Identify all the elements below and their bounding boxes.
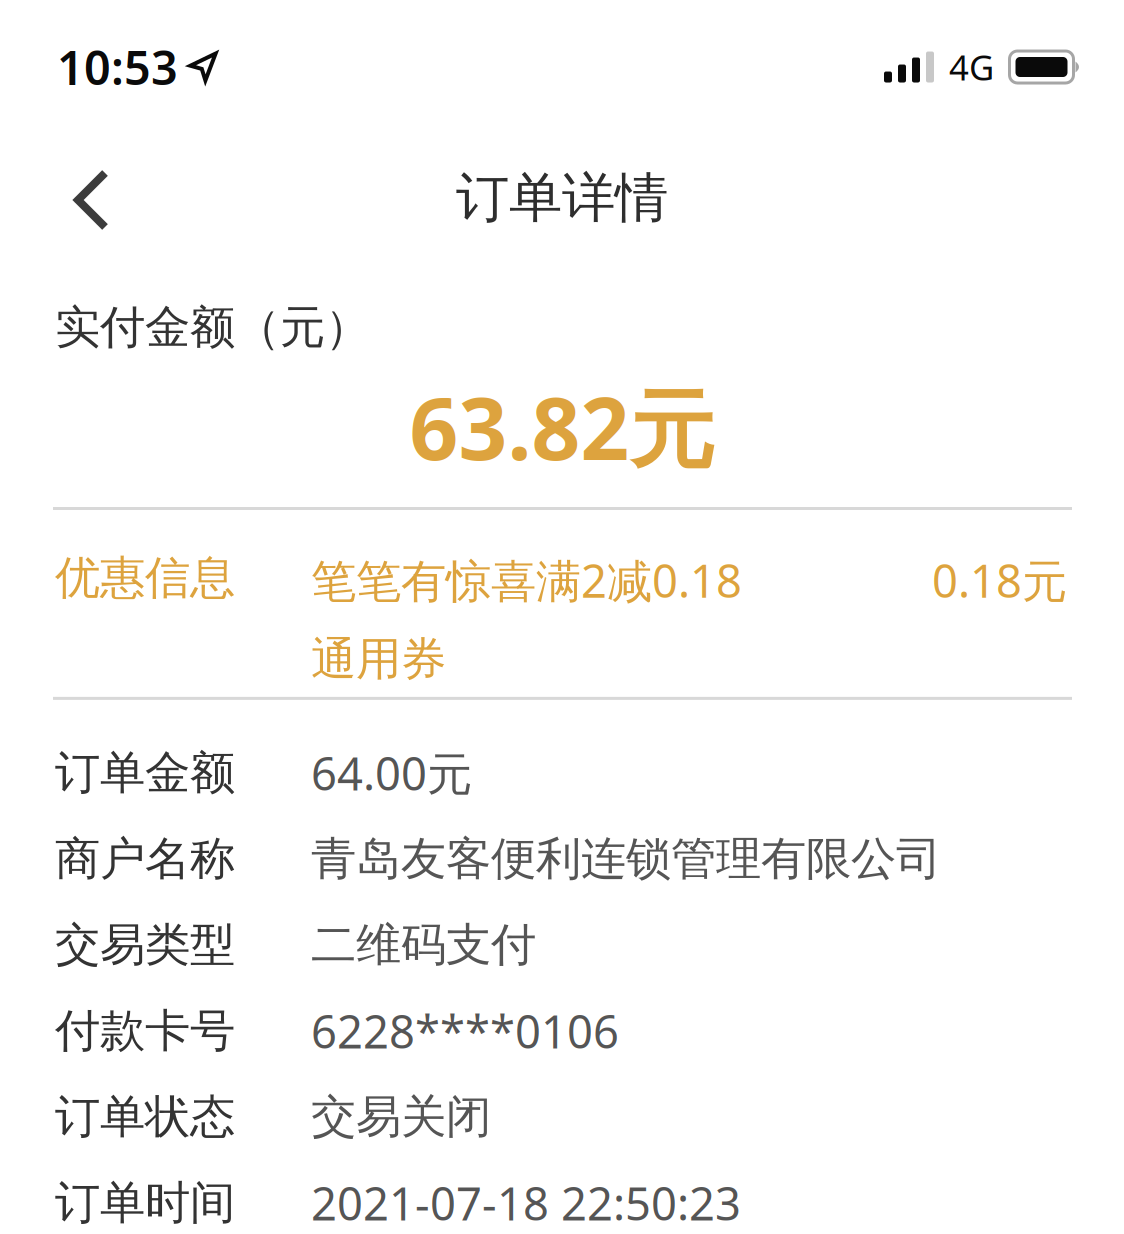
staticText: 优惠信息 bbox=[55, 550, 235, 606]
staticText: 订单时间 bbox=[55, 1175, 235, 1231]
staticText: 10:53 bbox=[57, 36, 178, 98]
staticText: 订单详情 bbox=[456, 165, 668, 231]
staticText: 订单金额 bbox=[55, 745, 235, 801]
staticText: 2021-07-18 22:50:23 bbox=[311, 1173, 741, 1233]
button[interactable]: 返回 bbox=[0, 169, 145, 227]
staticText: 6228****0106 bbox=[311, 1001, 619, 1061]
staticText: 交易关闭 bbox=[311, 1089, 491, 1145]
staticText: 青岛友客便利连锁管理有限公司 bbox=[311, 831, 941, 887]
staticText: 订单状态 bbox=[55, 1089, 235, 1145]
staticText: 通用券 bbox=[311, 631, 446, 687]
staticText: 0.18元 bbox=[932, 550, 1067, 610]
staticText: 64.00元 bbox=[311, 743, 472, 803]
staticText: 二维码支付 bbox=[311, 917, 536, 973]
staticText: 付款卡号 bbox=[55, 1003, 235, 1059]
staticText: 实付金额（元） bbox=[55, 300, 370, 355]
staticText: 交易类型 bbox=[55, 917, 235, 973]
staticText: 笔笔有惊喜满2减0.18 bbox=[311, 550, 742, 610]
staticText: 63.82元 bbox=[409, 370, 714, 484]
staticText: 4G bbox=[949, 44, 994, 90]
staticText: 商户名称 bbox=[55, 831, 235, 887]
